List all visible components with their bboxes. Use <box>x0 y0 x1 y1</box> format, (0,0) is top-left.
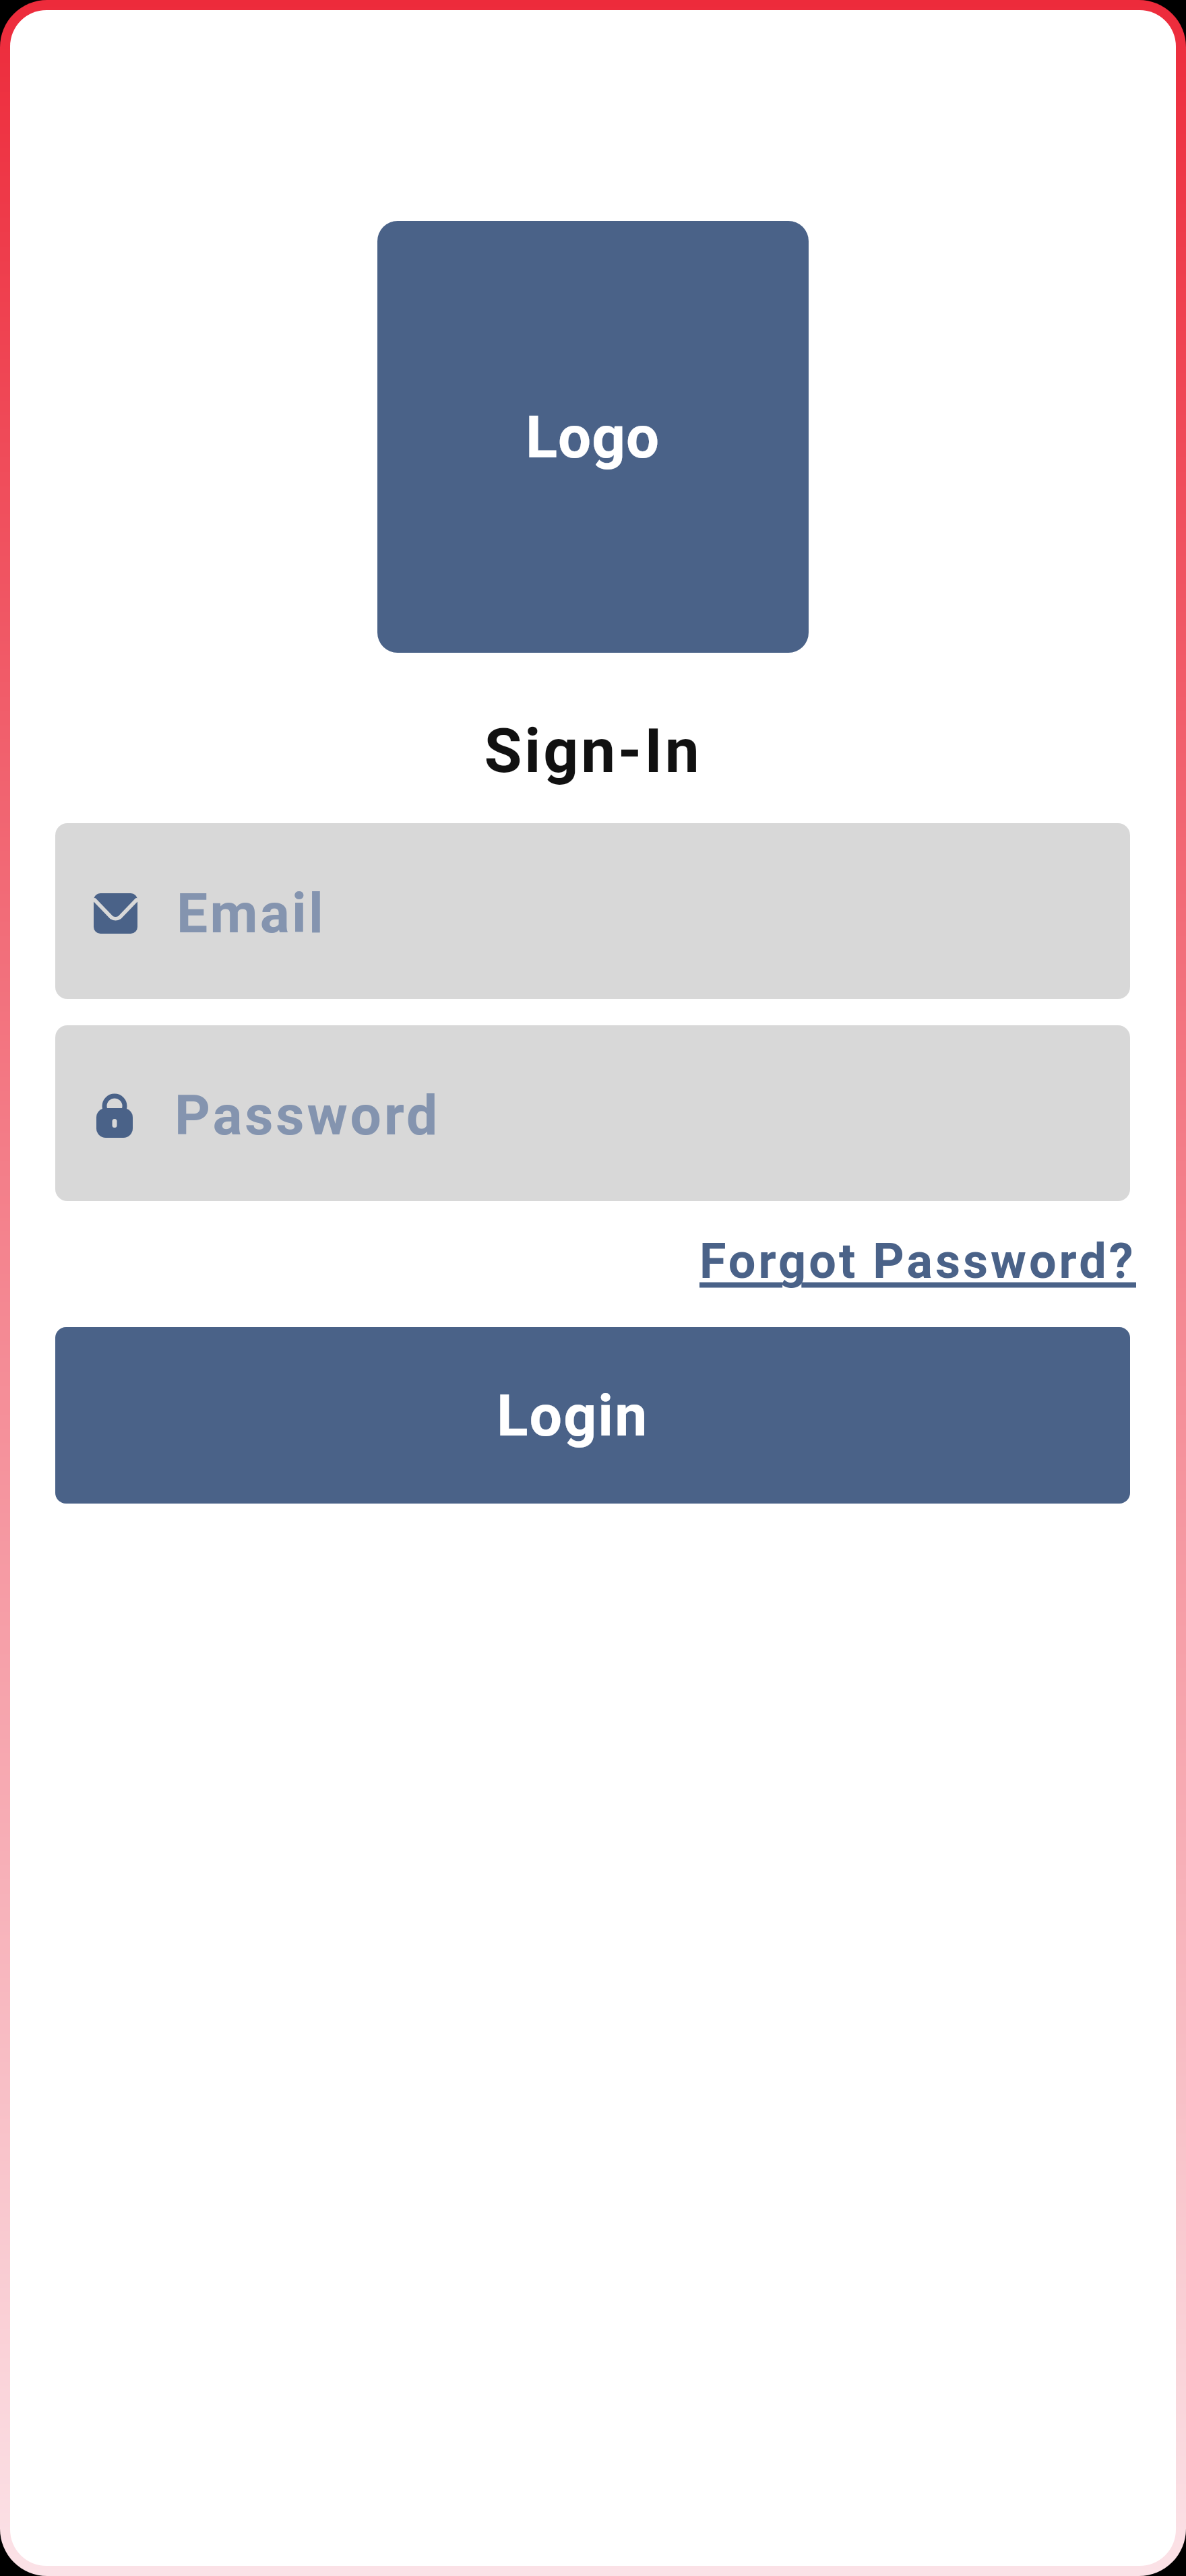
button[interactable]: Forgot Password? <box>699 1233 1136 1289</box>
staticText: Password <box>175 1083 441 1148</box>
button[interactable]: Login <box>55 1327 1130 1504</box>
staticText: Logo <box>526 403 660 472</box>
button[interactable]: Logo <box>377 221 809 653</box>
staticText: Email <box>177 881 326 946</box>
button[interactable]: Password <box>55 1025 1130 1201</box>
staticText: Sign-In <box>0 715 1186 787</box>
staticText: Login <box>497 1382 649 1450</box>
button[interactable]: Email <box>55 823 1130 999</box>
